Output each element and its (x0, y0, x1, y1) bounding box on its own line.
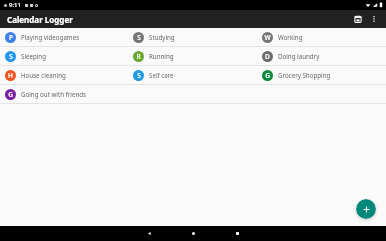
staticText: 9:11 (9, 1, 21, 9)
button[interactable]: G (257, 66, 386, 84)
staticText: G (265, 71, 270, 80)
staticText: Calendar Logger (7, 14, 73, 25)
button[interactable]: H (0, 66, 128, 84)
staticText: H (8, 71, 13, 80)
staticText: D (265, 52, 270, 61)
button[interactable]: P (0, 28, 128, 46)
button[interactable]: Home (176, 226, 210, 241)
button[interactable]: G (0, 85, 128, 103)
staticText: Sleeping (21, 52, 47, 60)
staticText: Going out with friends (21, 90, 86, 98)
button[interactable]: D (257, 47, 386, 65)
button[interactable]: More options (366, 11, 382, 27)
button[interactable]: S (128, 28, 257, 46)
staticText: Studying (149, 33, 175, 41)
staticText: S (137, 71, 141, 80)
button[interactable]: W (257, 28, 386, 46)
staticText: S (9, 52, 13, 61)
button[interactable]: S (128, 66, 257, 84)
staticText: P (9, 33, 13, 42)
staticText: G (8, 90, 13, 99)
staticText: House cleaning (21, 71, 66, 79)
button[interactable]: Recent apps (220, 226, 254, 241)
button[interactable]: Back (132, 226, 166, 241)
button[interactable]: Open calendar (350, 11, 366, 27)
button[interactable]: R (128, 47, 257, 65)
staticText: R (136, 52, 141, 61)
button[interactable]: Add activity (356, 199, 376, 219)
staticText: Doing laundry (278, 52, 320, 60)
staticText: Playing videogames (21, 33, 80, 41)
staticText: Working (278, 33, 303, 41)
button[interactable]: S (0, 47, 128, 65)
staticText: Running (149, 52, 174, 60)
staticText: W (264, 33, 271, 42)
staticText: Self care (149, 71, 174, 79)
staticText: Grocery Shopping (278, 71, 331, 79)
staticText: S (137, 33, 141, 42)
